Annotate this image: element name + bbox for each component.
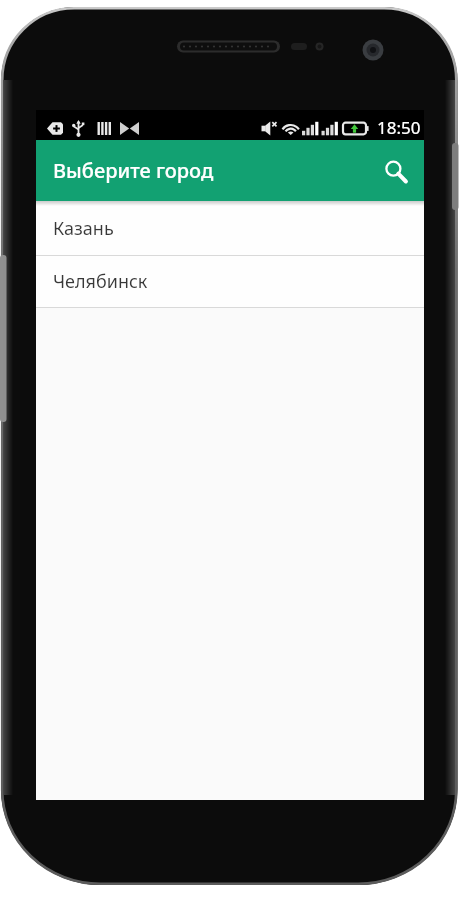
staticText: Казань	[53, 216, 114, 241]
staticText: Выберите город	[53, 157, 214, 184]
staticText: 18:50	[377, 116, 421, 139]
button[interactable]: Челябинск	[36, 256, 424, 307]
button[interactable]: Казань	[36, 201, 424, 255]
button[interactable]	[372, 140, 424, 201]
staticText: Челябинск	[53, 269, 148, 294]
